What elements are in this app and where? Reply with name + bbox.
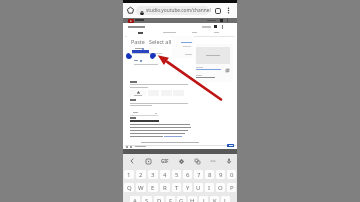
button[interactable]: 8 (205, 170, 214, 179)
button[interactable] (136, 6, 209, 15)
staticText: Paste (131, 38, 145, 45)
staticText: T (175, 184, 179, 192)
staticText: D (157, 197, 162, 202)
staticText: 0 (230, 171, 234, 179)
button[interactable]: settings (173, 154, 189, 168)
button[interactable]: gif (157, 154, 173, 168)
staticText: F (169, 197, 173, 202)
staticText: 7 (197, 171, 201, 179)
button[interactable]: translate (189, 154, 205, 168)
button[interactable]: Paste (130, 35, 146, 47)
staticText: I (208, 184, 211, 192)
staticText: W (138, 184, 144, 192)
staticText: S (145, 197, 149, 202)
button[interactable]: sticker (140, 154, 157, 168)
button[interactable]: 2 (136, 170, 146, 179)
staticText: P (230, 184, 234, 192)
button[interactable]: Copy link (225, 68, 230, 73)
button[interactable]: A (130, 196, 140, 202)
button[interactable]: Q (124, 183, 134, 192)
button[interactable]: Y (183, 183, 192, 192)
staticText: A (133, 197, 137, 202)
staticText: studio.youtube.com/channel (146, 7, 211, 14)
staticText: Select all (149, 38, 171, 45)
button[interactable]: I (205, 183, 214, 192)
staticText: 9 (219, 171, 223, 179)
button[interactable]: Select all (149, 35, 171, 47)
button[interactable]: Tabs (213, 6, 222, 15)
staticText: 3 (151, 171, 155, 179)
button[interactable]: mic (221, 154, 237, 168)
staticText: Q (127, 184, 132, 192)
button[interactable]: back (123, 154, 140, 168)
staticText: Y (186, 184, 190, 192)
button[interactable] (227, 144, 234, 147)
staticText: J (203, 197, 205, 202)
button[interactable]: more (205, 154, 221, 168)
button[interactable]: L (221, 196, 230, 202)
button[interactable]: Home (126, 6, 135, 15)
staticText: GIF (161, 158, 169, 164)
staticText: 5 (175, 171, 179, 179)
button[interactable]: 3 (148, 170, 158, 179)
button[interactable]: More options (224, 6, 233, 15)
button[interactable]: 6 (183, 170, 192, 179)
button[interactable]: S (142, 196, 152, 202)
button[interactable]: E (148, 183, 158, 192)
button[interactable]: U (194, 183, 203, 192)
button[interactable]: 4 (160, 170, 170, 179)
staticText: G (179, 197, 184, 202)
staticText: E (151, 184, 155, 192)
button[interactable]: Upload thumbnail (129, 90, 146, 96)
button[interactable]: D (154, 196, 164, 202)
button[interactable]: R (160, 183, 170, 192)
staticText: L (224, 197, 228, 202)
staticText: 8 (208, 171, 212, 179)
button[interactable]: 1 (124, 170, 134, 179)
button[interactable]: H (188, 196, 197, 202)
button[interactable]: Select playlist (130, 111, 158, 115)
staticText: U (196, 184, 201, 192)
staticText: 4 (163, 171, 167, 179)
staticText: 1 (127, 171, 131, 179)
button[interactable]: J (199, 196, 208, 202)
staticText: H (190, 197, 195, 202)
staticText: R (163, 184, 167, 192)
button[interactable]: F (166, 196, 175, 202)
button[interactable]: 7 (194, 170, 203, 179)
button[interactable]: G (177, 196, 186, 202)
button[interactable]: Selection start handle (126, 53, 132, 59)
button[interactable]: 0 (227, 170, 236, 179)
button[interactable]: 9 (216, 170, 225, 179)
button[interactable]: K (210, 196, 219, 202)
button[interactable]: P (227, 183, 236, 192)
staticText: 2 (139, 171, 143, 179)
button[interactable]: W (136, 183, 146, 192)
button[interactable]: T (172, 183, 181, 192)
staticText: 6 (186, 171, 190, 179)
button[interactable]: Selection end handle (150, 53, 156, 59)
staticText: O (218, 184, 223, 192)
button[interactable]: O (216, 183, 225, 192)
button[interactable]: 5 (172, 170, 181, 179)
staticText: K (213, 197, 217, 202)
